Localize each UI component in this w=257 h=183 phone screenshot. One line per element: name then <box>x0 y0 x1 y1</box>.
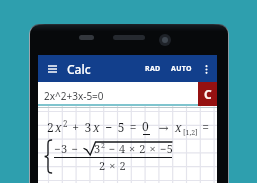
staticText: RAD <box>145 64 161 74</box>
staticText: x <box>175 119 183 135</box>
button[interactable]: 2 <box>38 106 217 183</box>
button[interactable]: Navigation menu <box>43 60 61 78</box>
staticText: − 4 × 2 × −5 <box>105 141 172 156</box>
button[interactable]: 2x^2+3x-5=0 <box>38 82 198 106</box>
staticText: + 3 <box>68 119 93 135</box>
staticText: x <box>55 119 63 135</box>
staticText: 2x^2+3x-5=0 <box>44 89 104 103</box>
staticText: → <box>150 119 175 135</box>
button[interactable]: RAD <box>142 60 164 78</box>
staticText: −3 − <box>54 141 82 156</box>
button[interactable]: More options <box>198 61 214 77</box>
staticText: 2 × 2 <box>99 158 127 173</box>
staticText: 0 <box>142 118 150 134</box>
staticText: 3 <box>94 141 101 156</box>
staticText: − 5 = <box>101 119 142 135</box>
staticText: C <box>204 86 212 102</box>
staticText: = <box>198 119 211 135</box>
staticText: AUTO <box>171 64 192 74</box>
staticText: 2 <box>63 118 68 129</box>
staticText: x <box>93 119 101 135</box>
staticText: Calc <box>67 61 91 77</box>
staticText: 2 <box>101 141 105 151</box>
button[interactable]: C <box>198 82 217 106</box>
staticText: 2 <box>47 119 55 135</box>
staticText: [1,2] <box>183 128 198 138</box>
button[interactable]: AUTO <box>168 60 195 78</box>
